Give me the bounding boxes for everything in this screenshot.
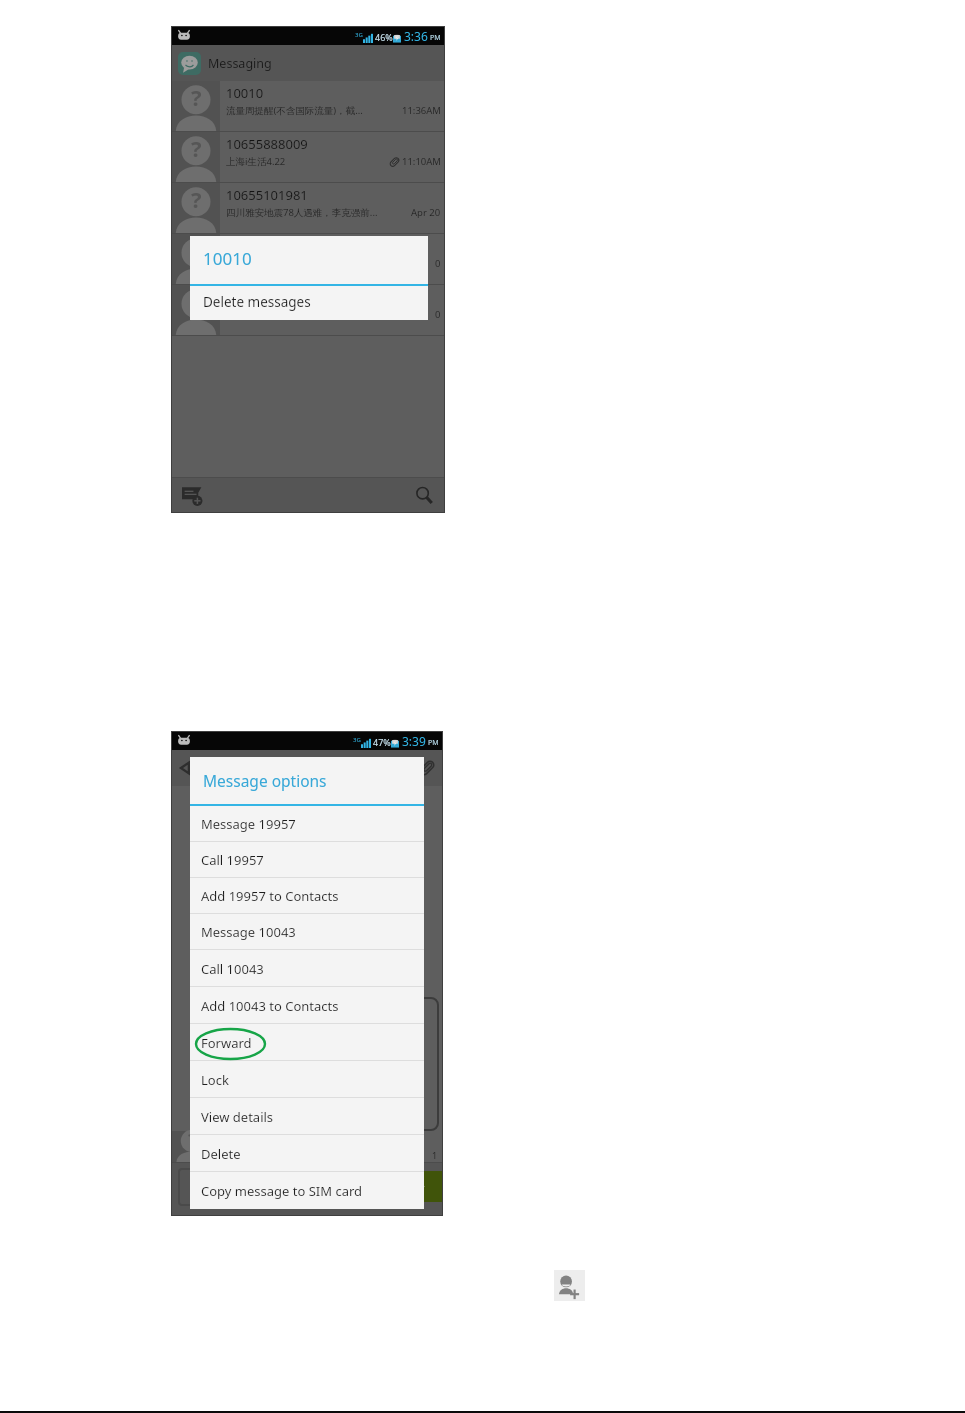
button[interactable]: Messaging (171, 45, 445, 81)
staticText: 流量周提醒(不含国际流量)，截... (226, 104, 402, 117)
staticText: 0 (435, 308, 441, 321)
staticText: 3G (355, 31, 363, 39)
staticText: 3:39 (402, 733, 426, 749)
button[interactable]: New message (182, 486, 204, 505)
staticText: Message 19957 (201, 815, 296, 833)
staticText: Call 10043 (201, 960, 264, 978)
staticText: ? (191, 184, 202, 214)
staticText: 47% (373, 736, 391, 748)
staticText: 10655101981 (226, 186, 308, 204)
staticText: 10010 (226, 84, 264, 102)
staticText: 10010 (203, 247, 252, 270)
button[interactable]: Add 10043 to Contacts (190, 987, 424, 1024)
button[interactable]: Message 10043 (190, 914, 424, 950)
button[interactable]: Call 19957 (190, 842, 424, 878)
staticText: ? (191, 235, 202, 265)
button[interactable]: ? (171, 234, 445, 285)
button[interactable]: Call 10043 (190, 950, 424, 987)
button[interactable]: Type message (178, 1168, 398, 1206)
staticText: 10655888009 (226, 135, 308, 153)
staticText: Copy message to SIM card (201, 1182, 363, 1200)
staticText (226, 257, 435, 270)
button[interactable]: ? (171, 285, 445, 336)
button[interactable]: Search (415, 486, 434, 505)
staticText: Add 19957 to Contacts (201, 887, 339, 905)
staticText (226, 308, 435, 321)
button[interactable]: Lock (190, 1061, 424, 1098)
staticText: View details (201, 1108, 274, 1126)
button[interactable]: Forward (190, 1024, 424, 1061)
staticText: 106 (226, 237, 249, 255)
staticText: Message 10043 (201, 923, 296, 941)
button[interactable]: Delete (190, 1135, 424, 1172)
staticText: Apr 20 (411, 206, 441, 219)
staticText: 1 (432, 1149, 438, 1161)
button[interactable]: ? (171, 132, 445, 183)
button[interactable]: View details (190, 1098, 424, 1135)
staticText: Add 10043 to Contacts (201, 997, 339, 1015)
button[interactable]: ? (171, 81, 445, 132)
staticText: 3:36 (404, 28, 428, 44)
button[interactable]: Message 19957 (190, 806, 424, 842)
staticText: 上海i生活4.22 (226, 155, 389, 168)
button[interactable]: Add contact (554, 1270, 585, 1301)
staticText: Call 19957 (201, 851, 264, 869)
button[interactable]: ? (171, 183, 445, 234)
staticText: 四川雅安地震78人遇难，李克强前... (226, 206, 411, 219)
staticText: Delete messages (203, 293, 311, 311)
staticText: 46% (375, 31, 393, 43)
staticText: PM (428, 738, 439, 748)
staticText: 0 (435, 257, 441, 270)
staticText: Messaging (208, 55, 272, 72)
button[interactable]: Delete messages (190, 286, 428, 320)
staticText: Message options (203, 770, 327, 791)
staticText: PM (430, 33, 441, 43)
button[interactable]: Send (400, 1171, 442, 1202)
staticText: ? (191, 82, 202, 112)
staticText: 11:10AM (402, 155, 441, 168)
button[interactable]: Attach (419, 760, 435, 776)
button[interactable]: Copy message to SIM card (190, 1172, 424, 1209)
button[interactable]: Add 19957 to Contacts (190, 878, 424, 914)
staticText: ? (191, 133, 202, 163)
button[interactable]: Back (177, 759, 195, 777)
staticText: Forward (201, 1034, 252, 1052)
staticText: 106 (226, 288, 249, 306)
staticText: Delete (201, 1145, 241, 1163)
staticText: ? (188, 1129, 196, 1151)
staticText: 3G (353, 736, 361, 744)
staticText: Lock (201, 1071, 229, 1089)
staticText: 11:36AM (402, 104, 441, 117)
